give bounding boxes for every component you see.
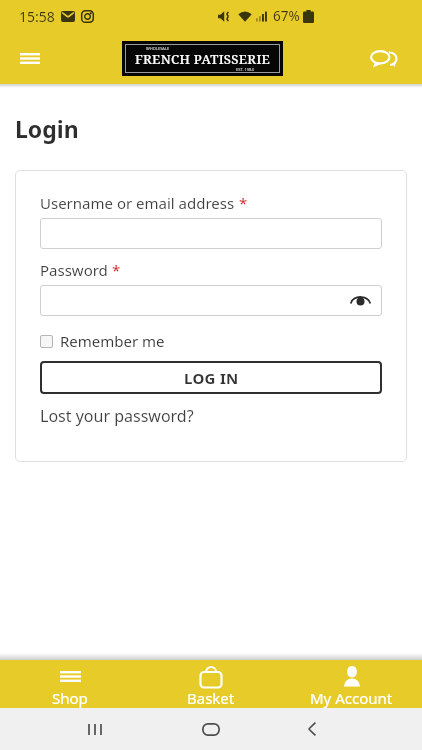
staticText: 15:58 — [19, 7, 55, 26]
staticText: FRENCH PATISSERIE — [135, 50, 271, 68]
staticText: * — [239, 193, 248, 213]
button[interactable]: LOG IN — [40, 361, 382, 394]
staticText: 67% — [273, 7, 300, 25]
button[interactable]: Remember me — [40, 331, 165, 351]
button[interactable]: Shop — [0, 660, 140, 708]
button[interactable] — [196, 714, 226, 744]
button[interactable] — [40, 218, 382, 249]
staticText: LOG IN — [184, 368, 239, 388]
button[interactable]: Basket — [140, 660, 281, 708]
staticText: Password — [40, 260, 108, 280]
button[interactable] — [364, 40, 402, 76]
button[interactable] — [12, 40, 48, 76]
button[interactable] — [40, 285, 382, 316]
staticText: Remember me — [60, 331, 165, 351]
button[interactable] — [80, 714, 110, 744]
button[interactable]: Lost your password? — [40, 405, 194, 427]
staticText: * — [112, 260, 121, 280]
button[interactable]: My Account — [281, 660, 422, 708]
staticText: Shop — [52, 688, 88, 708]
staticText: WHOLESALE — [146, 46, 170, 51]
staticText: Basket — [187, 688, 235, 708]
staticText: Username or email address — [40, 193, 235, 213]
staticText: My Account — [310, 688, 393, 708]
button[interactable] — [297, 714, 327, 744]
staticText: EST. 1984 — [236, 67, 254, 72]
staticText: Login — [15, 113, 79, 144]
